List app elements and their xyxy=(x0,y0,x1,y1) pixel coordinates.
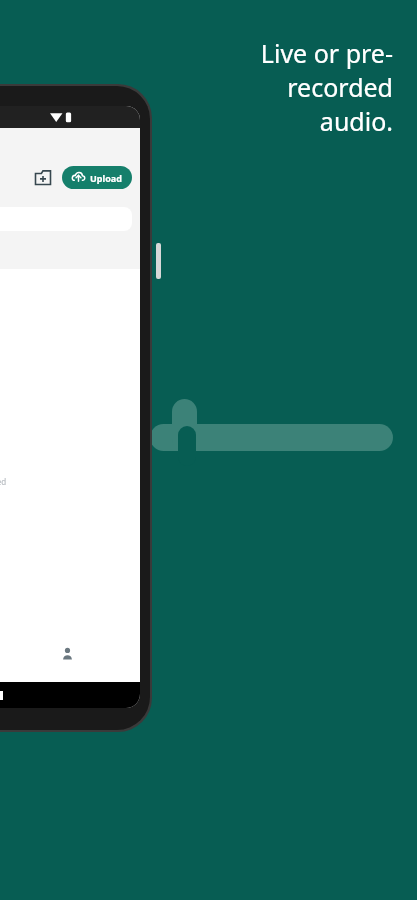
button[interactable]: New folder xyxy=(30,164,56,190)
staticText: Upload xyxy=(90,172,122,184)
staticText: g direct converted xyxy=(0,476,7,487)
button[interactable]: Upload xyxy=(62,166,132,189)
staticText: Live or pre- recorded audio. xyxy=(260,36,393,138)
button[interactable]: Profile xyxy=(54,640,80,666)
button[interactable]: 02.m4a xyxy=(0,451,140,487)
